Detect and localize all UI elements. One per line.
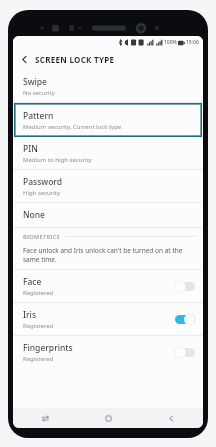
staticText: Fingerprints [23,342,73,354]
staticText: Registered [23,289,54,297]
staticText: Registered [23,355,54,363]
button[interactable]: Password [13,170,203,202]
button[interactable]: Back [13,48,35,70]
button[interactable]: On [175,314,195,325]
staticText: Iris [23,309,37,321]
button[interactable]: Off [175,347,195,358]
staticText: Password [23,176,63,188]
staticText: Pattern [23,110,54,122]
button[interactable]: Iris [13,303,203,335]
button[interactable]: None [13,203,203,227]
button[interactable]: PIN [13,137,203,169]
button[interactable]: Face [13,270,203,302]
staticText: Swipe [23,76,47,88]
button[interactable]: Recents [13,408,77,428]
button[interactable]: Fingerprints [13,336,203,368]
button[interactable]: Swipe [13,70,203,102]
button[interactable]: Off [175,281,195,292]
staticText: Face unlock and Iris unlock can't be tur… [23,246,193,264]
button[interactable]: Back [140,408,203,428]
staticText: Medium security, Current lock type [23,123,122,131]
staticText: Registered [23,322,54,330]
button[interactable]: Home [77,408,140,428]
staticText: BIOMETRICS [23,233,61,240]
staticText: Medium to high security [23,156,92,164]
staticText: Face [23,276,42,288]
staticText: 100% [164,39,177,46]
staticText: SCREEN LOCK TYPE [35,54,115,65]
staticText: High security [23,189,61,197]
staticText: None [23,209,45,221]
staticText: PIN [23,143,38,155]
button[interactable]: Pattern [14,103,202,137]
staticText: No security [23,89,55,97]
staticText: 15:06 [186,39,199,46]
